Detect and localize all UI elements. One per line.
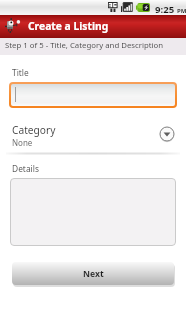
staticText: 9:25 [155,3,175,16]
staticText: Details [12,163,39,174]
staticText: None [12,137,33,148]
staticText: PM [177,7,186,15]
button[interactable]: Category [0,121,186,149]
staticText: Category [12,123,56,137]
button[interactable] [10,178,176,246]
button[interactable]: Choose category [159,126,175,142]
button[interactable]: Next [12,262,174,285]
staticText: Next [83,268,104,280]
staticText: Step 1 of 5 - Title, Category and Descri… [5,40,164,51]
button[interactable] [11,84,175,106]
staticText: Create a Listing [28,19,109,33]
staticText: Title [12,67,29,78]
